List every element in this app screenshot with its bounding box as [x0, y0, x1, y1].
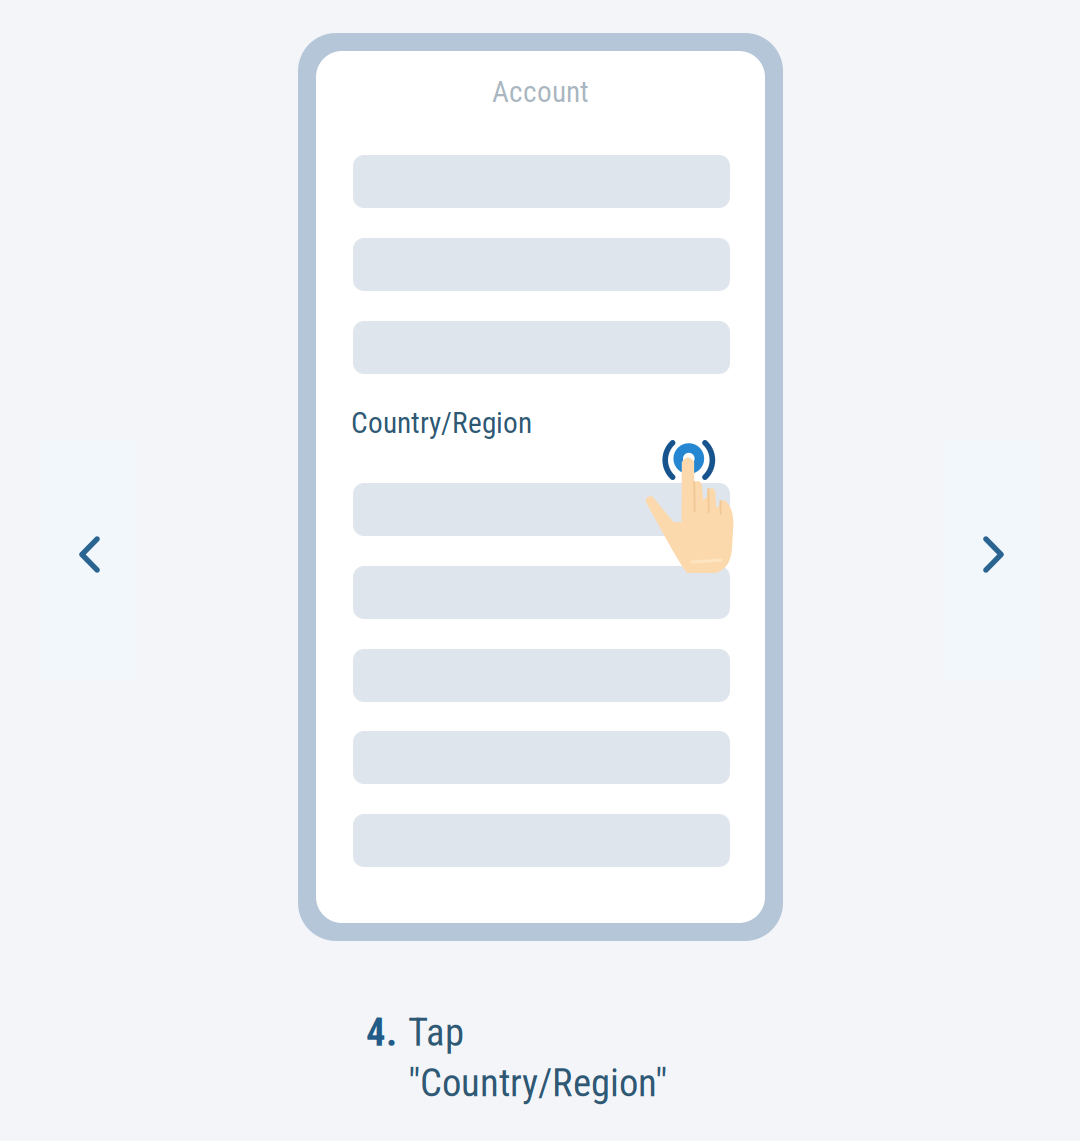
staticText: "Country/Region" [408, 1060, 667, 1106]
staticText: Account [492, 75, 589, 109]
button[interactable]: Country/Region [351, 406, 651, 440]
button[interactable]: Next step [944, 440, 1040, 680]
staticText: Country/Region [351, 406, 532, 440]
staticText: Tap [408, 1010, 464, 1055]
staticText: 4. [366, 1010, 397, 1055]
button[interactable]: Previous step [40, 440, 136, 680]
